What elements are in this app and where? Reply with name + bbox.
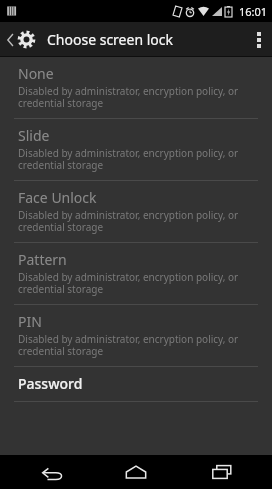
staticText: Choose screen lock bbox=[47, 30, 173, 49]
button[interactable]: Password bbox=[0, 367, 272, 401]
button[interactable]: Navigate up bbox=[4, 26, 39, 53]
staticText: None bbox=[18, 64, 54, 83]
staticText: Slide bbox=[18, 126, 50, 145]
staticText: Disabled by administrator, encryption po… bbox=[18, 146, 258, 172]
button[interactable]: Home bbox=[101, 455, 171, 489]
staticText: Disabled by administrator, encryption po… bbox=[18, 208, 258, 234]
button[interactable]: Face Unlock bbox=[0, 181, 272, 242]
button[interactable]: PIN bbox=[0, 305, 272, 366]
button[interactable]: Pattern bbox=[0, 243, 272, 304]
staticText: 16:01 bbox=[239, 4, 268, 19]
staticText: PIN bbox=[18, 312, 42, 331]
staticText: Disabled by administrator, encryption po… bbox=[18, 84, 258, 110]
button[interactable]: Recent apps bbox=[187, 455, 257, 489]
staticText: Disabled by administrator, encryption po… bbox=[18, 332, 258, 358]
button[interactable]: None bbox=[0, 57, 272, 118]
staticText: Pattern bbox=[18, 250, 67, 269]
staticText: Password bbox=[18, 374, 83, 393]
button[interactable]: Back bbox=[16, 455, 86, 489]
button[interactable]: More options bbox=[246, 22, 272, 57]
staticText: Face Unlock bbox=[18, 188, 97, 207]
button[interactable]: Slide bbox=[0, 119, 272, 180]
staticText: Disabled by administrator, encryption po… bbox=[18, 270, 258, 296]
